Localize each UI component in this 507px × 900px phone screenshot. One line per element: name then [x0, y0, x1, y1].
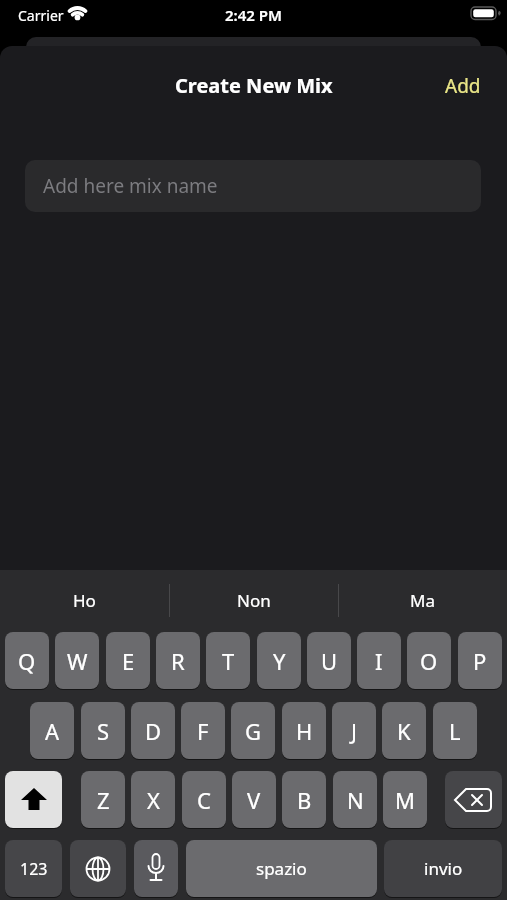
button[interactable]: N: [333, 771, 377, 828]
button[interactable]: F: [181, 702, 225, 759]
button[interactable]: [445, 771, 502, 828]
staticText: Ma: [410, 589, 435, 612]
staticText: E: [122, 646, 135, 676]
staticText: invio: [424, 857, 463, 880]
staticText: U: [321, 646, 338, 676]
staticText: Q: [18, 646, 36, 676]
staticText: L: [449, 716, 461, 746]
staticText: Add: [445, 73, 481, 99]
staticText: Y: [273, 646, 286, 676]
staticText: R: [171, 646, 185, 676]
staticText: Ho: [73, 589, 96, 612]
button[interactable]: D: [131, 702, 175, 759]
button[interactable]: H: [282, 702, 326, 759]
button[interactable]: V: [232, 771, 276, 828]
button[interactable]: Y: [257, 632, 301, 689]
button[interactable]: I: [357, 632, 401, 689]
button[interactable]: [5, 771, 62, 828]
staticText: I: [375, 646, 383, 676]
staticText: 123: [20, 858, 48, 880]
button[interactable]: C: [182, 771, 226, 828]
staticText: C: [197, 785, 211, 815]
button[interactable]: Ma: [338, 570, 507, 630]
staticText: W: [67, 646, 88, 676]
button[interactable]: A: [30, 702, 74, 759]
staticText: P: [473, 646, 487, 676]
button[interactable]: Non: [169, 570, 338, 630]
button[interactable]: Ho: [0, 570, 169, 630]
button[interactable]: B: [282, 771, 326, 828]
button[interactable]: spazio: [186, 840, 377, 897]
button[interactable]: G: [231, 702, 275, 759]
button[interactable]: L: [433, 702, 477, 759]
button[interactable]: Q: [5, 632, 49, 689]
staticText: T: [222, 646, 235, 676]
staticText: V: [247, 785, 261, 815]
button[interactable]: 123: [5, 840, 62, 897]
button[interactable]: Add: [445, 73, 481, 99]
button[interactable]: M: [383, 771, 427, 828]
button[interactable]: X: [131, 771, 175, 828]
button[interactable]: W: [55, 632, 99, 689]
button[interactable]: U: [307, 632, 351, 689]
button[interactable]: T: [206, 632, 250, 689]
button[interactable]: S: [81, 702, 125, 759]
staticText: Carrier: [18, 6, 64, 25]
button[interactable]: Add here mix name: [25, 160, 481, 212]
button[interactable]: [134, 840, 178, 897]
staticText: B: [297, 785, 312, 815]
staticText: 2:42 PM: [225, 5, 282, 25]
staticText: Add here mix name: [43, 173, 218, 199]
staticText: O: [420, 646, 438, 676]
button[interactable]: [70, 840, 126, 897]
staticText: M: [395, 785, 415, 815]
button[interactable]: R: [156, 632, 200, 689]
button[interactable]: K: [382, 702, 426, 759]
staticText: X: [147, 785, 160, 815]
staticText: D: [145, 716, 162, 746]
staticText: Non: [237, 589, 271, 612]
staticText: J: [351, 716, 358, 746]
staticText: K: [397, 716, 411, 746]
staticText: S: [97, 716, 110, 746]
button[interactable]: J: [332, 702, 376, 759]
staticText: Z: [97, 785, 110, 815]
button[interactable]: O: [407, 632, 451, 689]
staticText: G: [245, 716, 262, 746]
button[interactable]: Z: [81, 771, 125, 828]
staticText: N: [347, 785, 364, 815]
button[interactable]: invio: [384, 840, 502, 897]
staticText: F: [197, 716, 209, 746]
staticText: Create New Mix: [175, 72, 333, 99]
button[interactable]: E: [106, 632, 150, 689]
button[interactable]: P: [458, 632, 502, 689]
staticText: spazio: [256, 857, 307, 880]
staticText: H: [296, 716, 313, 746]
staticText: A: [45, 716, 60, 746]
